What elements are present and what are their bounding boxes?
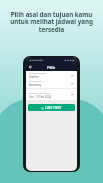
staticText: Bandung xyxy=(29,83,42,87)
staticText: Pilih xyxy=(47,65,56,70)
button[interactable]: CARI TIKET xyxy=(28,104,75,111)
button[interactable]: Tanggal Berangkat xyxy=(26,89,77,100)
staticText: Gambir xyxy=(29,75,39,79)
button[interactable]: Titik Berangkat xyxy=(26,71,77,79)
staticText: Titik Tujuan xyxy=(29,79,42,82)
staticText: Titik Berangkat xyxy=(29,71,46,74)
button[interactable]: Titik Tujuan xyxy=(26,79,77,87)
staticText: Tanggal Berangkat xyxy=(29,91,51,94)
button[interactable]: Back xyxy=(27,64,33,70)
staticText: Pilih asal dan tujuan kamu untuk melihat… xyxy=(10,10,93,34)
staticText: CARI TIKET xyxy=(45,106,62,110)
staticText: Sen, 12 Feb 2024 xyxy=(29,95,52,99)
